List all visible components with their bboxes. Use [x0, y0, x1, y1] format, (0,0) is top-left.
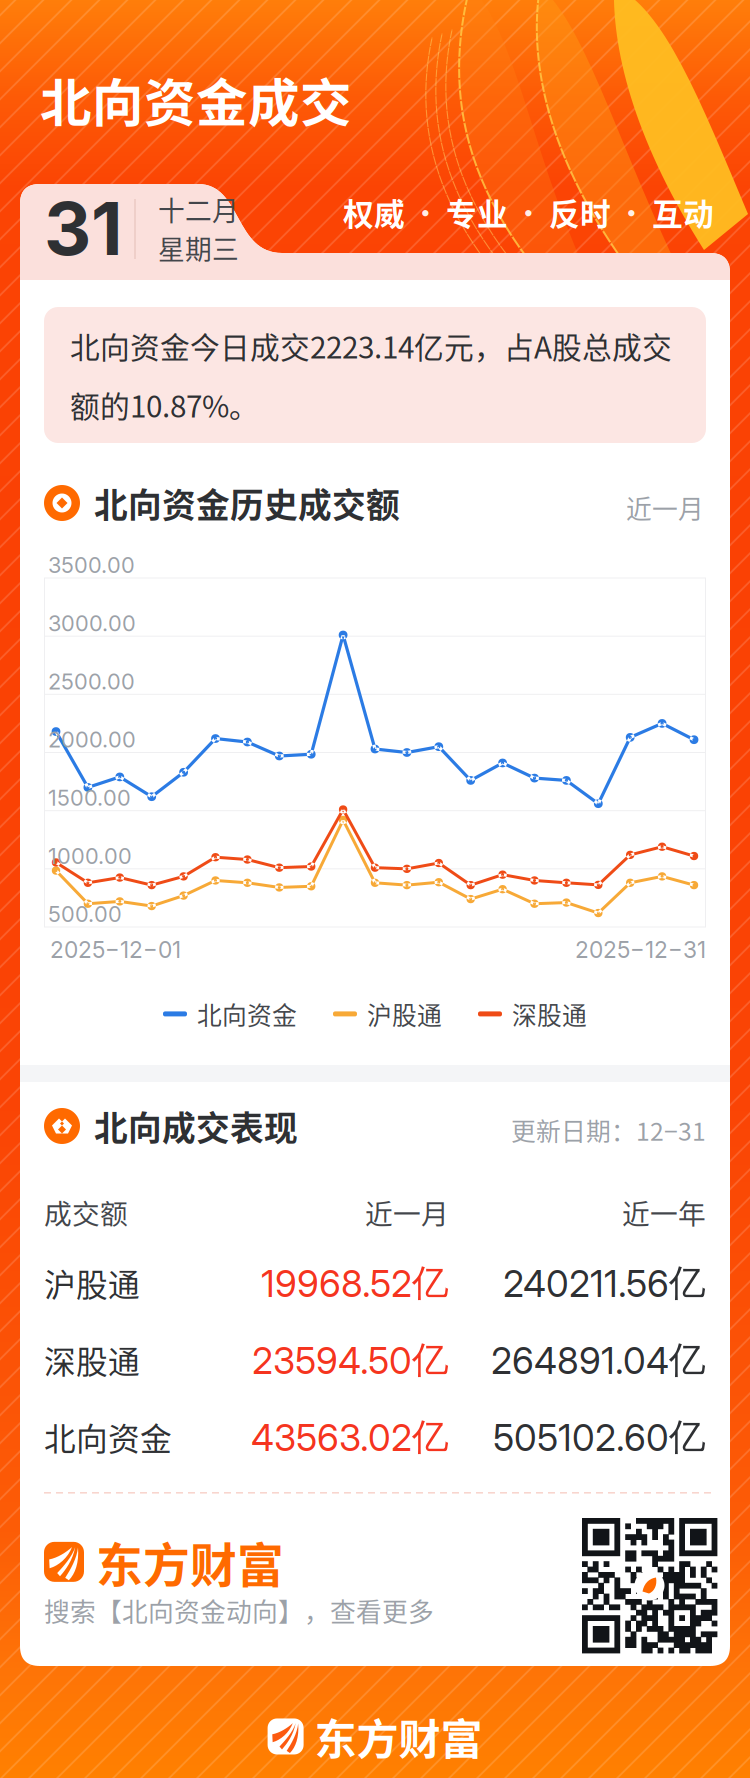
staticText: 北向成交表现: [94, 1102, 298, 1150]
button[interactable]: 沪股通: [44, 1252, 706, 1314]
staticText: 近一年: [622, 1192, 706, 1232]
staticText: 2025−12−01: [50, 936, 181, 964]
staticText: 沪股通: [367, 996, 442, 1032]
staticText: 北向资金历史成交额: [94, 479, 400, 527]
staticText: 沪股通: [44, 1260, 140, 1306]
staticText: 23594.50亿: [252, 1337, 449, 1383]
staticText: 19968.52亿: [261, 1260, 449, 1306]
staticText: 43563.02亿: [251, 1414, 449, 1460]
staticText: 500.00: [48, 901, 122, 927]
staticText: 2000.00: [48, 726, 136, 753]
staticText: 东方财富: [96, 1528, 284, 1596]
staticText: 星期三: [158, 229, 239, 267]
staticText: 近一月: [626, 489, 704, 526]
staticText: 专业: [446, 190, 508, 234]
staticText: 额的10.87%。: [70, 383, 259, 426]
staticText: 搜索【北向资金动向】，查看更多: [44, 1592, 434, 1629]
staticText: 北向资金今日成交2223.14亿元，占A股总成交: [70, 324, 672, 367]
staticText: 成交额: [44, 1192, 128, 1232]
staticText: 深股通: [44, 1337, 140, 1383]
staticText: 北向资金成交: [40, 62, 352, 137]
staticText: 240211.56亿: [503, 1260, 706, 1306]
staticText: 更新日期：12−31: [511, 1112, 706, 1148]
staticText: 3500.00: [48, 552, 135, 578]
staticText: 十二月: [158, 190, 239, 229]
staticText: 1000.00: [48, 843, 132, 869]
staticText: 31: [44, 184, 123, 273]
button[interactable]: 近一月: [624, 485, 706, 530]
staticText: 505102.60亿: [493, 1414, 706, 1460]
staticText: 264891.04亿: [491, 1337, 706, 1383]
staticText: ·: [413, 194, 438, 230]
staticText: 近一月: [365, 1192, 449, 1232]
staticText: 互动: [652, 190, 714, 234]
button[interactable]: 扫描二维码: [582, 1518, 717, 1653]
staticText: 北向资金: [197, 996, 297, 1032]
staticText: 北向资金: [44, 1414, 172, 1460]
staticText: 2025−12−31: [575, 936, 706, 964]
staticText: 反时: [549, 190, 611, 234]
staticText: 1500.00: [48, 785, 131, 811]
staticText: ·: [516, 194, 541, 230]
staticText: 权威: [343, 190, 405, 234]
staticText: 深股通: [512, 996, 587, 1032]
button[interactable]: 搜索【北向资金动向】，查看更多: [44, 1586, 434, 1635]
button[interactable]: 深股通: [44, 1329, 706, 1391]
staticText: ·: [619, 194, 644, 230]
staticText: 2500.00: [48, 668, 135, 695]
staticText: 3000.00: [48, 610, 136, 637]
button[interactable]: 东方财富: [44, 1528, 284, 1596]
staticText: 东方财富: [314, 1706, 482, 1767]
button[interactable]: 北向资金: [44, 1406, 706, 1468]
